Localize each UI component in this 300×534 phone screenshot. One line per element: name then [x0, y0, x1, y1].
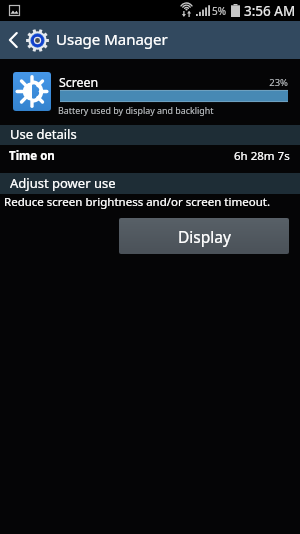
button[interactable]: Display [119, 218, 289, 254]
staticText: Usage Manager [56, 29, 168, 49]
staticText: Screen [59, 74, 99, 91]
staticText: Display [178, 226, 231, 247]
staticText: 5% [212, 4, 227, 18]
staticText: 6h 28m 7s [234, 148, 290, 164]
staticText: 3:56 AM [244, 2, 296, 20]
staticText: Time on [9, 148, 55, 164]
staticText: Reduce screen brightness and/or screen t… [4, 194, 271, 210]
button[interactable]: Time on [0, 144, 300, 170]
staticText: 23% [258, 76, 288, 89]
staticText: Adjust power use [10, 174, 116, 192]
staticText: Battery used by display and backlight [58, 104, 214, 116]
button[interactable]: Back [2, 29, 24, 51]
staticText: Use details [10, 125, 77, 143]
